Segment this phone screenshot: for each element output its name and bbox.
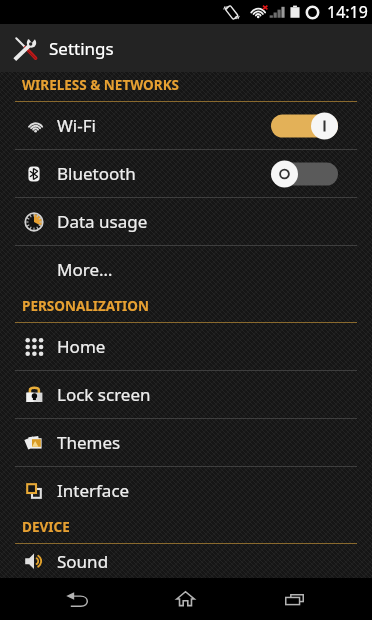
staticText: Sound bbox=[57, 550, 109, 573]
staticText: PERSONALIZATION bbox=[22, 297, 149, 315]
staticText: Wi-Fi bbox=[57, 114, 96, 137]
button[interactable]: Themes bbox=[0, 419, 372, 466]
staticText: Themes bbox=[57, 431, 121, 454]
button[interactable]: Lock screen bbox=[0, 371, 372, 418]
button[interactable]: Data usage bbox=[0, 198, 372, 245]
button[interactable]: Home bbox=[0, 323, 372, 370]
staticText: Bluetooth bbox=[57, 162, 136, 185]
button[interactable]: Interface bbox=[0, 467, 372, 514]
button[interactable]: Wi-Fi bbox=[0, 102, 372, 149]
button[interactable]: Settings bbox=[0, 24, 372, 72]
staticText: WIRELESS & NETWORKS bbox=[22, 76, 180, 94]
staticText: Settings bbox=[49, 37, 114, 60]
staticText: Lock screen bbox=[57, 383, 151, 406]
staticText: More… bbox=[57, 258, 113, 281]
button[interactable]: Off bbox=[271, 160, 338, 188]
staticText: 14:19 bbox=[327, 1, 368, 23]
button[interactable]: Back bbox=[24, 578, 131, 620]
staticText: Data usage bbox=[57, 210, 148, 233]
button[interactable]: On bbox=[271, 112, 338, 140]
staticText: Interface bbox=[57, 479, 130, 502]
button[interactable]: Sound bbox=[0, 544, 372, 578]
button[interactable]: Bluetooth bbox=[0, 150, 372, 197]
staticText: DEVICE bbox=[22, 518, 70, 536]
staticText: Home bbox=[57, 335, 106, 358]
button[interactable]: More… bbox=[0, 246, 372, 293]
button[interactable]: Home bbox=[131, 578, 240, 620]
button[interactable]: Recents bbox=[240, 578, 349, 620]
